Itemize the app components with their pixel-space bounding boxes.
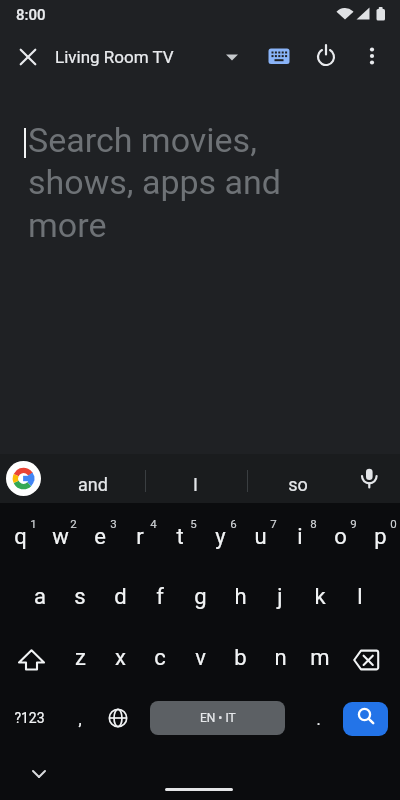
button[interactable]: so	[253, 462, 343, 506]
button[interactable]: I	[150, 462, 240, 506]
button[interactable]: z	[60, 630, 100, 686]
button[interactable]: v	[180, 630, 220, 686]
staticText: y	[215, 524, 226, 550]
staticText: x	[115, 645, 126, 671]
button[interactable]	[6, 461, 41, 496]
staticText: q	[14, 524, 27, 550]
button[interactable]	[11, 641, 51, 681]
button[interactable]: a	[20, 569, 60, 625]
staticText: u	[254, 524, 267, 550]
button[interactable]	[12, 41, 44, 73]
staticText: I	[193, 474, 198, 495]
staticText: j	[277, 584, 283, 610]
button[interactable]: d	[100, 569, 140, 625]
button[interactable]: j	[260, 569, 300, 625]
staticText: z	[75, 645, 86, 671]
staticText: g	[194, 584, 207, 610]
staticText: c	[154, 645, 166, 671]
staticText: i	[297, 524, 303, 550]
button[interactable]: s	[60, 569, 100, 625]
button[interactable]: l	[340, 569, 380, 625]
staticText: 0	[390, 517, 397, 530]
button[interactable]: f	[140, 569, 180, 625]
staticText: so	[288, 474, 308, 495]
button[interactable]: u	[240, 509, 280, 565]
staticText: 8	[310, 517, 317, 530]
button[interactable]: y	[200, 509, 240, 565]
button[interactable]	[353, 462, 385, 494]
button[interactable]: ,	[60, 691, 100, 747]
staticText: .	[316, 710, 321, 729]
staticText: s	[74, 584, 86, 610]
button[interactable]	[310, 41, 342, 73]
button[interactable]: c	[140, 630, 180, 686]
staticText: 9	[350, 517, 357, 530]
staticText: Search movies, shows, apps and more	[28, 120, 281, 245]
staticText: e	[94, 524, 106, 550]
button[interactable]: t	[160, 509, 200, 565]
button[interactable]	[102, 702, 134, 734]
button[interactable]: h	[220, 569, 260, 625]
button[interactable]: k	[300, 569, 340, 625]
button[interactable]: x	[100, 630, 140, 686]
button[interactable]: and	[48, 462, 138, 506]
staticText: 2	[70, 517, 77, 530]
staticText: 3	[110, 517, 117, 530]
button[interactable]: b	[220, 630, 260, 686]
staticText: l	[357, 584, 363, 610]
staticText: 7	[270, 517, 277, 530]
staticText: 1	[30, 517, 37, 530]
staticText: w	[52, 524, 69, 550]
staticText: a	[34, 584, 46, 610]
staticText: v	[195, 645, 206, 671]
button[interactable]: o	[320, 509, 360, 565]
staticText: 8:00	[16, 6, 46, 24]
staticText: k	[314, 584, 326, 610]
button[interactable]: m	[300, 630, 340, 686]
staticText: h	[234, 584, 247, 610]
staticText: f	[156, 584, 164, 610]
button[interactable]: e	[80, 509, 120, 565]
button[interactable]	[343, 702, 388, 736]
button[interactable]: w	[40, 509, 80, 565]
button[interactable]: p	[360, 509, 400, 565]
staticText: m	[310, 645, 330, 671]
button[interactable]: g	[180, 569, 220, 625]
button[interactable]	[216, 41, 248, 73]
staticText: t	[176, 524, 184, 550]
staticText: n	[274, 645, 287, 671]
staticText: Living Room TV	[55, 47, 174, 67]
button[interactable]: Search movies, shows, apps and more	[0, 82, 400, 454]
button[interactable]	[344, 641, 386, 683]
staticText: EN • IT	[200, 711, 236, 725]
staticText: o	[334, 524, 347, 550]
staticText: 6	[230, 517, 237, 530]
button[interactable]	[356, 41, 388, 73]
staticText: b	[234, 645, 247, 671]
staticText: ,	[78, 710, 82, 729]
staticText: 5	[190, 517, 197, 530]
staticText: p	[374, 524, 387, 550]
button[interactable]	[23, 758, 55, 790]
staticText: 4	[150, 517, 157, 530]
button[interactable]: q	[0, 509, 40, 565]
button[interactable]: n	[260, 630, 300, 686]
button[interactable]	[263, 41, 295, 73]
staticText: ?123	[14, 710, 45, 726]
staticText: r	[136, 524, 144, 550]
button[interactable]: r	[120, 509, 160, 565]
button[interactable]: EN • IT	[150, 701, 285, 735]
button[interactable]: ?123	[1, 690, 57, 746]
button[interactable]: i	[280, 509, 320, 565]
staticText: and	[78, 474, 108, 495]
staticText: d	[114, 584, 127, 610]
button[interactable]: .	[298, 691, 338, 747]
